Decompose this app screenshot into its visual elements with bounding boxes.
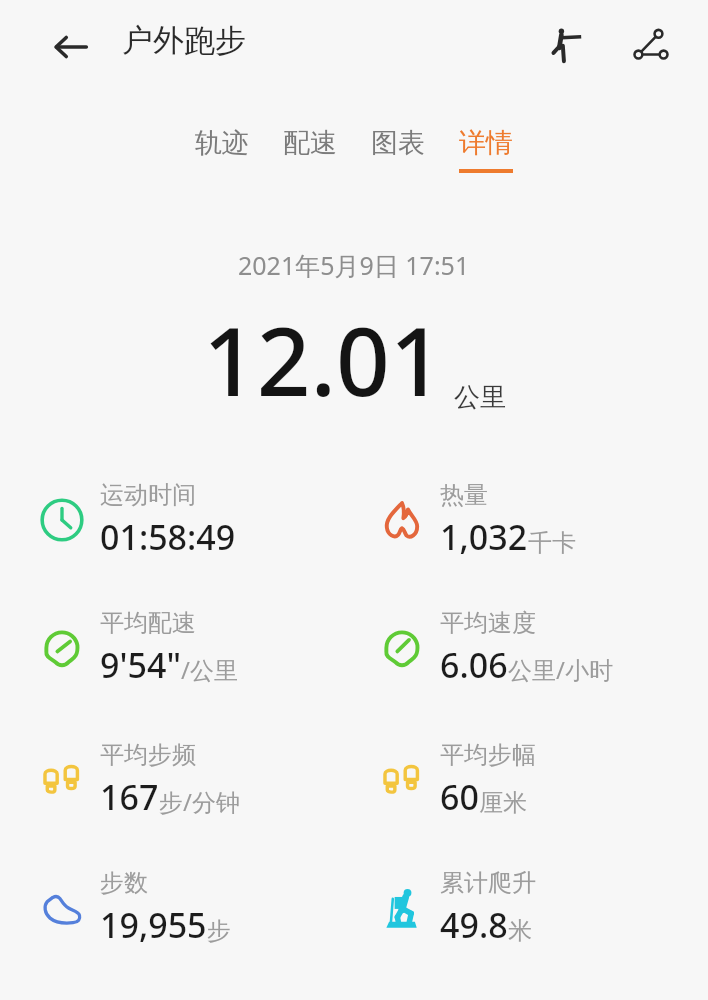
button[interactable]: 运动时间: [36, 480, 354, 560]
staticText: 公里/小时: [508, 653, 613, 686]
staticText: 公里: [454, 381, 506, 414]
staticText: 平均速度: [440, 608, 536, 638]
button[interactable]: Share: [618, 12, 684, 78]
staticText: 热量: [440, 480, 488, 510]
button[interactable]: 轨迹: [195, 126, 249, 173]
staticText: 01:58:49: [100, 514, 236, 560]
button[interactable]: 平均步幅: [376, 740, 708, 820]
button[interactable]: 平均步频: [36, 740, 354, 820]
staticText: 平均步频: [100, 740, 196, 770]
staticText: 轨迹: [195, 126, 249, 160]
staticText: 平均步幅: [440, 740, 536, 770]
staticText: 步: [207, 916, 231, 946]
staticText: 户外跑步: [122, 21, 246, 60]
button[interactable]: Back: [40, 16, 102, 78]
staticText: 运动时间: [100, 480, 196, 510]
staticText: 累计爬升: [440, 868, 536, 898]
button[interactable]: 平均速度: [376, 608, 708, 688]
button[interactable]: 步数: [36, 868, 354, 948]
staticText: 步/分钟: [159, 785, 240, 818]
staticText: 平均配速: [100, 608, 196, 638]
button[interactable]: 详情: [459, 126, 513, 173]
staticText: 配速: [283, 126, 337, 160]
staticText: 千卡: [528, 528, 576, 558]
staticText: 49.8: [440, 902, 508, 948]
button[interactable]: 配速: [283, 126, 337, 173]
staticText: 详情: [459, 126, 513, 160]
staticText: 19,955: [100, 902, 207, 948]
staticText: 167: [100, 774, 159, 820]
button[interactable]: 热量: [376, 480, 708, 560]
staticText: 厘米: [479, 788, 527, 818]
staticText: 步数: [100, 868, 148, 898]
staticText: 6.06: [440, 642, 508, 688]
staticText: 2021年5月9日 17:51: [238, 248, 470, 282]
staticText: /公里: [181, 653, 238, 686]
button[interactable]: 累计爬升: [376, 868, 708, 948]
button[interactable]: 平均配速: [36, 608, 354, 688]
staticText: 米: [508, 916, 532, 946]
staticText: 9'54": [100, 642, 181, 688]
button[interactable]: 图表: [371, 126, 425, 173]
staticText: 60: [440, 774, 479, 820]
staticText: 图表: [371, 126, 425, 160]
button[interactable]: Workout type: [532, 12, 598, 78]
staticText: 1,032: [440, 514, 528, 560]
staticText: 12.01: [203, 296, 444, 424]
